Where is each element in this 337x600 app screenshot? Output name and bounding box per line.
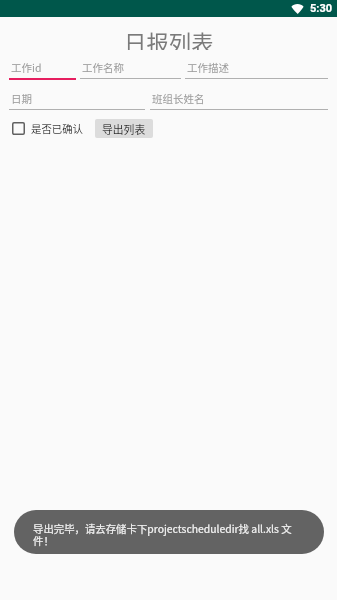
staticText: 导出完毕，请去存储卡下projectscheduledir找 all.xls 文… — [33, 521, 303, 548]
button[interactable]: 是否已确认 — [12, 119, 83, 138]
staticText: 工作名称 — [82, 60, 124, 75]
staticText: 日期 — [11, 91, 32, 106]
button[interactable]: 工作id — [9, 60, 76, 80]
other: Wi-Fi signal — [291, 3, 304, 14]
button[interactable]: 导出列表 — [95, 119, 153, 138]
staticText: 是否已确认 — [31, 121, 83, 136]
staticText: 日报列表 — [124, 26, 214, 50]
staticText: 工作id — [11, 60, 42, 75]
button[interactable]: 工作名称 — [80, 60, 181, 79]
button[interactable]: 工作描述 — [185, 60, 328, 79]
staticText: 工作描述 — [187, 60, 229, 75]
staticText: 班组长姓名 — [152, 91, 205, 106]
button[interactable]: 日期 — [9, 91, 145, 110]
staticText: 导出列表 — [102, 121, 146, 137]
staticText: 5:30 — [310, 2, 333, 15]
button[interactable]: 班组长姓名 — [150, 91, 328, 110]
